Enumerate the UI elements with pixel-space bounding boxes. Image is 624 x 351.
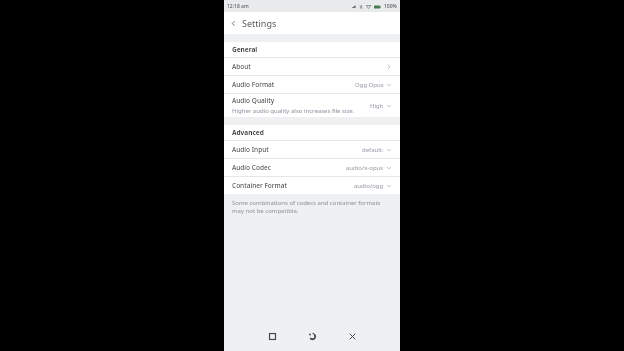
staticText: Settings bbox=[242, 17, 277, 29]
staticText: Audio Input bbox=[232, 145, 269, 154]
staticText: Higher audio quality also increases file… bbox=[232, 107, 355, 115]
staticText: audio/x-opus bbox=[346, 164, 384, 172]
staticText: Some combinations of codecs and containe… bbox=[232, 199, 390, 215]
staticText: General bbox=[232, 45, 258, 54]
staticText: Audio Quality bbox=[232, 96, 275, 105]
button[interactable]: Recent apps bbox=[261, 325, 283, 347]
staticText: About bbox=[232, 62, 251, 71]
staticText: Ogg Opus bbox=[355, 81, 384, 89]
button[interactable]: Back bbox=[341, 325, 363, 347]
button[interactable]: Container Format bbox=[224, 177, 400, 194]
button[interactable]: Audio Codec bbox=[224, 159, 400, 176]
button[interactable]: About bbox=[224, 58, 400, 75]
button[interactable]: Home bbox=[301, 325, 323, 347]
staticText: Audio Format bbox=[232, 80, 275, 89]
staticText: default: bbox=[362, 146, 384, 154]
button[interactable]: Audio Input bbox=[224, 141, 400, 158]
button[interactable]: Audio Quality bbox=[224, 94, 400, 117]
staticText: 100% bbox=[384, 3, 397, 10]
button[interactable]: Back bbox=[224, 14, 242, 32]
staticText: Audio Codec bbox=[232, 163, 271, 172]
staticText: Container Format bbox=[232, 181, 287, 190]
staticText: High bbox=[370, 102, 384, 110]
staticText: audio/ogg bbox=[354, 182, 384, 190]
staticText: 12:18 am bbox=[227, 3, 249, 10]
button[interactable]: Audio Format bbox=[224, 76, 400, 93]
staticText: Advanced bbox=[232, 128, 264, 137]
